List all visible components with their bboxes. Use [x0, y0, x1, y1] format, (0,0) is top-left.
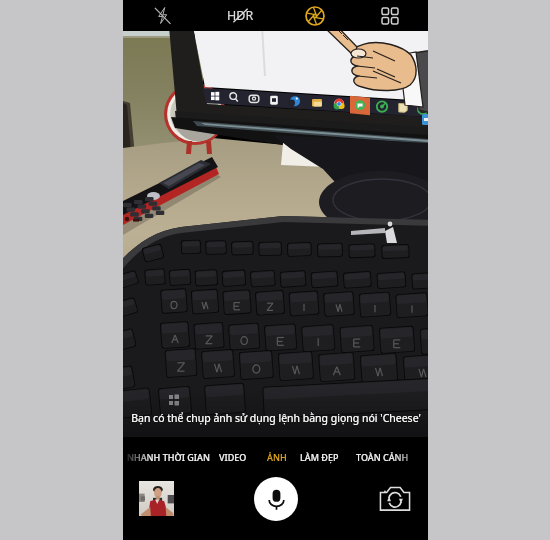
button[interactable]: TOÀN CẢNH: [356, 451, 409, 463]
button[interactable]: Voice shutter: [254, 477, 298, 521]
button[interactable]: Gallery: [139, 481, 174, 516]
button[interactable]: Switch camera: [375, 478, 415, 518]
staticText: NHANH THỜI GIAN: [127, 451, 210, 463]
staticText: ẢNH: [267, 451, 287, 463]
staticText: Bạn có thể chụp ảnh sử dụng lệnh bằng gi…: [131, 411, 421, 425]
button[interactable]: ẢNH: [267, 451, 287, 463]
button[interactable]: Settings: [351, 0, 428, 31]
staticText: LÀM ĐẸP: [300, 451, 339, 463]
button[interactable]: Flash off: [123, 0, 201, 31]
button[interactable]: VIDEO: [219, 451, 247, 463]
button[interactable]: Shooting mode: [279, 0, 351, 31]
staticText: TOÀN CẢNH: [356, 451, 409, 463]
staticText: VIDEO: [219, 451, 247, 463]
staticText: HDR: [227, 7, 254, 24]
button[interactable]: HDR off: [201, 0, 279, 31]
button[interactable]: LÀM ĐẸP: [300, 451, 339, 463]
button[interactable]: NHANH THỜI GIAN: [127, 451, 210, 463]
